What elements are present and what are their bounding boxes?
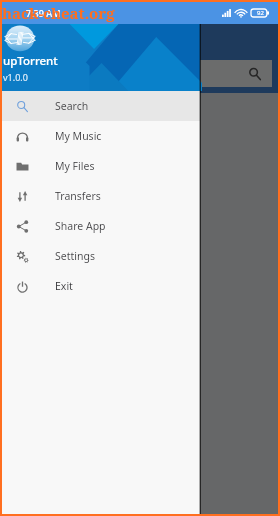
staticText: My Music bbox=[55, 129, 102, 143]
button[interactable]: Transfers bbox=[2, 181, 200, 211]
button[interactable]: Search bbox=[32, 60, 272, 87]
staticText: Exit bbox=[55, 279, 73, 293]
button[interactable]: My Files bbox=[2, 151, 200, 181]
other: Search bbox=[248, 67, 262, 81]
staticText: upTorrent bbox=[3, 53, 58, 69]
staticText: Share App bbox=[55, 219, 106, 233]
staticText: Transfers bbox=[55, 189, 101, 203]
staticText: Search bbox=[55, 99, 89, 113]
staticText: 92 bbox=[257, 9, 264, 17]
button[interactable]: Search bbox=[2, 91, 200, 121]
staticText: v1.0.0 bbox=[3, 71, 28, 83]
button[interactable]: Settings bbox=[2, 241, 200, 271]
button[interactable]: Exit bbox=[2, 271, 200, 301]
staticText: hack-cheat.org bbox=[2, 3, 115, 23]
staticText: 7:39 AM bbox=[26, 7, 61, 19]
staticText: Settings bbox=[55, 249, 95, 263]
staticText: My Files bbox=[55, 159, 95, 173]
button[interactable]: My Music bbox=[2, 121, 200, 151]
button[interactable]: Share App bbox=[2, 211, 200, 241]
